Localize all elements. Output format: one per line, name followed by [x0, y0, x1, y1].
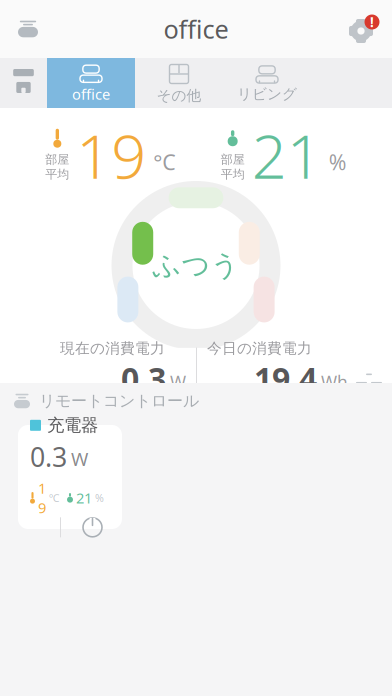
staticText: リビング — [237, 85, 297, 103]
staticText: ふつう — [152, 248, 239, 283]
staticText: 0.3 — [30, 439, 67, 474]
staticText: W — [170, 370, 186, 393]
staticText: 0.3 — [121, 357, 166, 400]
staticText: W — [71, 446, 88, 471]
staticText: ℃ — [49, 491, 60, 505]
staticText: 21 — [252, 114, 322, 196]
staticText: office — [72, 84, 110, 104]
staticText: その他 — [156, 86, 201, 104]
staticText: % — [95, 491, 104, 505]
staticText: 充電器 — [47, 415, 98, 436]
staticText: 19.4 — [254, 357, 317, 400]
button[interactable]: Collapse — [352, 363, 386, 393]
staticText: 部屋 平均 — [45, 152, 69, 182]
button[interactable]: 充電器 — [18, 425, 122, 529]
staticText: ! — [370, 13, 374, 31]
button[interactable]: その他 — [135, 58, 223, 108]
button[interactable]: office — [47, 58, 135, 108]
staticText: 今日の消費電力 — [207, 339, 312, 357]
staticText: 21 — [76, 488, 92, 508]
staticText: °C — [153, 148, 175, 176]
staticText: 現在の消費電力 — [60, 339, 165, 357]
button[interactable]: リビング — [223, 58, 311, 108]
button[interactable]: Home — [0, 58, 47, 108]
button[interactable]: Remote control — [0, 0, 56, 58]
button[interactable]: Settings — [336, 0, 392, 58]
staticText: 19 — [38, 478, 46, 517]
staticText: % — [329, 148, 347, 176]
staticText: 部屋 平均 — [221, 152, 245, 182]
staticText: Wh — [321, 370, 348, 393]
staticText: 19 — [76, 114, 146, 196]
staticText: office — [163, 12, 228, 46]
staticText: リモートコントロール — [39, 391, 199, 411]
